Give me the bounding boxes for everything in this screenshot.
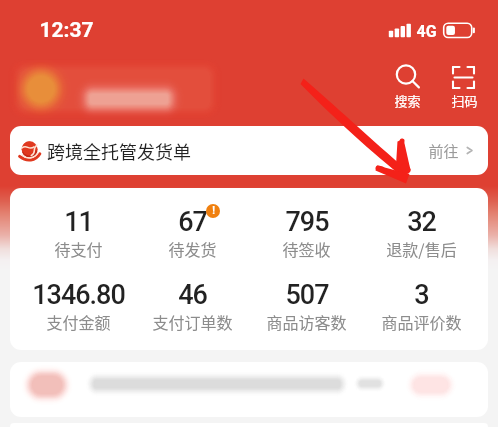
staticText: 支付金额 (46, 310, 111, 333)
staticText: 11 (64, 206, 93, 238)
button[interactable]: 跨境全托管发货单 (10, 126, 488, 175)
button[interactable]: 11 (21, 206, 135, 261)
staticText: 跨境全托管发货单 (47, 138, 191, 164)
staticText: 795 (285, 206, 329, 238)
staticText: 507 (285, 279, 329, 311)
staticText: 商品评价数 (381, 310, 462, 333)
button[interactable]: 795 (249, 206, 364, 261)
button[interactable]: 32 (364, 206, 479, 261)
staticText: 扫码 (451, 91, 478, 110)
staticText: 46 (178, 279, 207, 311)
staticText: 32 (407, 206, 436, 238)
staticText: 3 (414, 279, 429, 311)
staticText: 支付订单数 (152, 310, 233, 333)
staticText: 67 (178, 206, 207, 238)
button[interactable]: 1346.80 (21, 279, 135, 334)
button[interactable]: 3 (364, 279, 479, 334)
other: Annotation arrow (0, 0, 498, 427)
staticText: 4G (416, 22, 437, 41)
staticText: 待签收 (282, 237, 331, 260)
button[interactable]: 搜索 Search (392, 63, 423, 110)
staticText: ! (212, 205, 215, 217)
other: 扫码 Scan (452, 63, 478, 89)
button[interactable]: 67 (135, 206, 249, 261)
staticText: 12:37 (39, 18, 94, 43)
staticText: 前往 (428, 140, 459, 162)
staticText: 搜索 (394, 91, 421, 110)
staticText: 待支付 (54, 237, 103, 260)
button[interactable]: 507 (249, 279, 364, 334)
button[interactable]: 46 (135, 279, 249, 334)
other: 搜索 Search (395, 63, 421, 89)
staticText: 商品访客数 (266, 310, 347, 333)
staticText: 1346.80 (32, 279, 125, 311)
button[interactable] (10, 362, 488, 417)
button[interactable]: 扫码 Scan (449, 63, 480, 110)
staticText: 退款/售后 (386, 237, 457, 260)
staticText: 待发货 (168, 237, 217, 260)
